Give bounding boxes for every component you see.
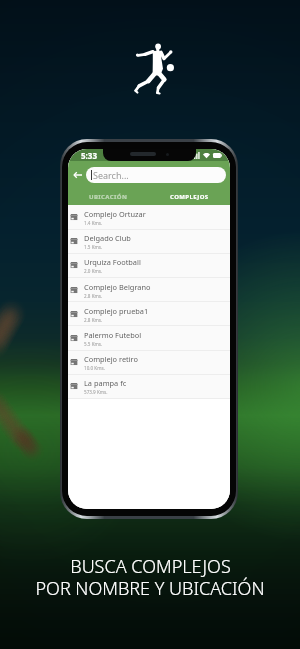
staticText: Complejo Ortuzar — [84, 209, 146, 219]
button[interactable]: Search... — [86, 167, 226, 183]
button[interactable]: COMPLEJOS — [149, 188, 230, 205]
staticText: 5.5 Kms. — [84, 341, 103, 347]
button[interactable]: Back — [68, 161, 86, 188]
button[interactable]: Complejo prueba1 — [68, 302, 230, 326]
staticText: Complejo prueba1 — [84, 306, 149, 316]
staticText: Urquiza Football — [84, 257, 141, 267]
button[interactable]: Urquiza Football — [68, 253, 230, 277]
button[interactable]: La pampa fc — [68, 374, 230, 398]
staticText: 10.0 Kms. — [84, 365, 105, 371]
staticText: 2.8 Kms. — [84, 317, 103, 323]
staticText: 5:33 — [81, 150, 97, 161]
button[interactable]: Complejo Belgrano — [68, 278, 230, 302]
staticText: Complejo Belgrano — [84, 282, 151, 292]
staticText: Delgado Club — [84, 233, 131, 243]
button[interactable]: UBICACIÓN — [68, 188, 149, 205]
staticText: 573.9 Kms. — [84, 389, 108, 395]
staticText: 2.8 Kms. — [84, 293, 103, 299]
button[interactable]: Complejo Ortuzar — [68, 205, 230, 229]
staticText: Palermo Futebol — [84, 330, 142, 340]
staticText: La pampa fc — [84, 378, 127, 388]
button[interactable]: Palermo Futebol — [68, 326, 230, 350]
staticText: Complejo retiro — [84, 354, 138, 364]
staticText: Search... — [93, 169, 129, 181]
staticText: BUSCA COMPLEJOS — [70, 554, 231, 579]
staticText: COMPLEJOS — [170, 193, 209, 201]
button[interactable]: Delgado Club — [68, 229, 230, 253]
staticText: POR NOMBRE Y UBICACIÓN — [35, 576, 265, 601]
staticText: UBICACIÓN — [89, 193, 128, 201]
staticText: 1.4 Kms. — [84, 220, 103, 226]
staticText: 1.5 Kms. — [84, 244, 103, 250]
staticText: 2.0 Kms. — [84, 268, 103, 274]
button[interactable]: Complejo retiro — [68, 350, 230, 374]
